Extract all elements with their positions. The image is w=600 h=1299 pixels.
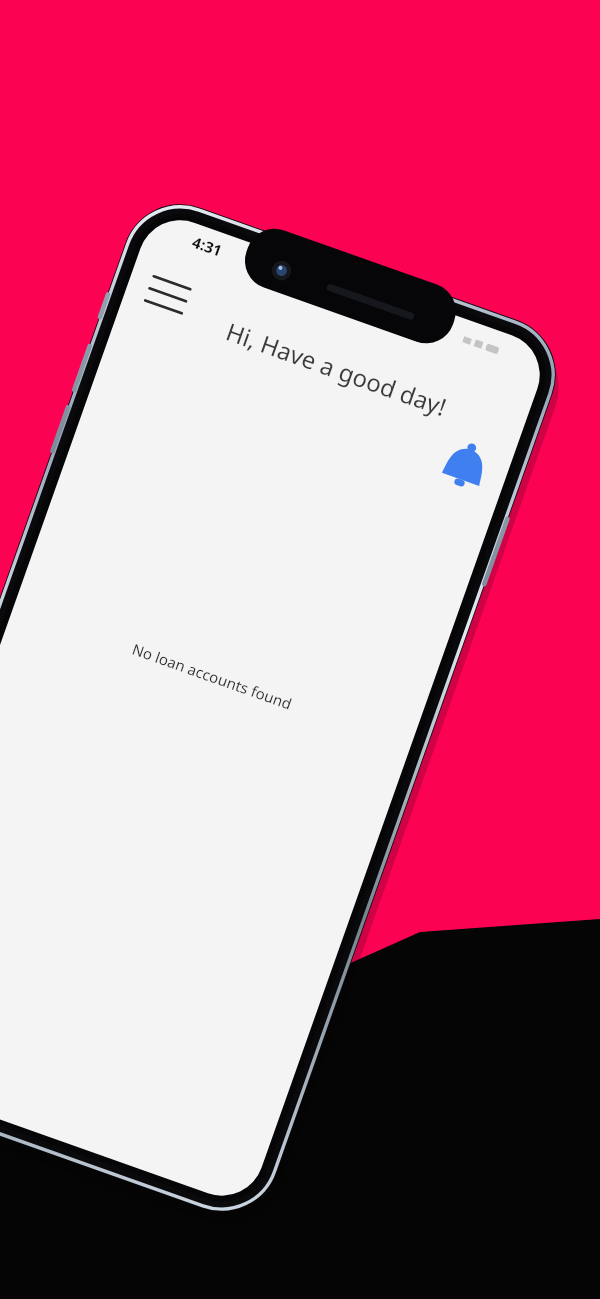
button[interactable]: Open navigation menu — [255, 224, 303, 272]
button[interactable]: Notifications — [554, 370, 598, 414]
